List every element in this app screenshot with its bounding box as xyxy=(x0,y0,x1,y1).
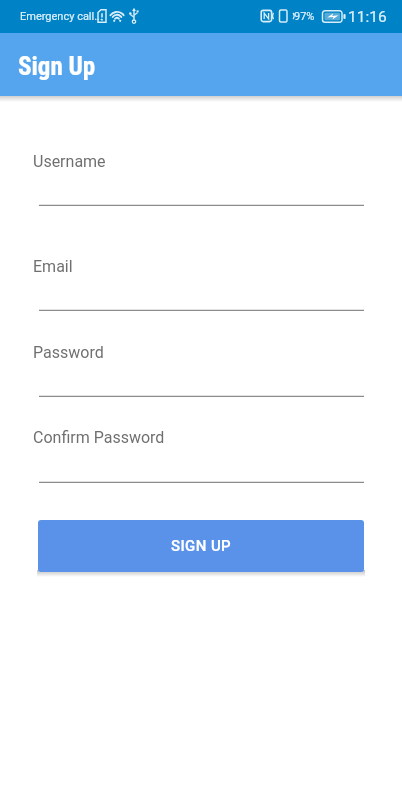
staticText: Emergency call... xyxy=(20,10,103,23)
staticText: 97% xyxy=(294,10,315,23)
button[interactable] xyxy=(39,270,364,312)
staticText: Confirm Password xyxy=(33,428,165,447)
button[interactable] xyxy=(39,356,364,398)
staticText: 11:16 xyxy=(348,8,387,26)
staticText: Sign Up xyxy=(18,52,96,81)
staticText: Password xyxy=(33,343,104,362)
staticText: Email xyxy=(33,257,73,276)
button[interactable]: SIGN UP xyxy=(38,520,364,572)
button[interactable] xyxy=(39,165,364,207)
staticText: Username xyxy=(33,152,106,171)
staticText: SIGN UP xyxy=(171,537,232,555)
button[interactable] xyxy=(39,442,364,484)
